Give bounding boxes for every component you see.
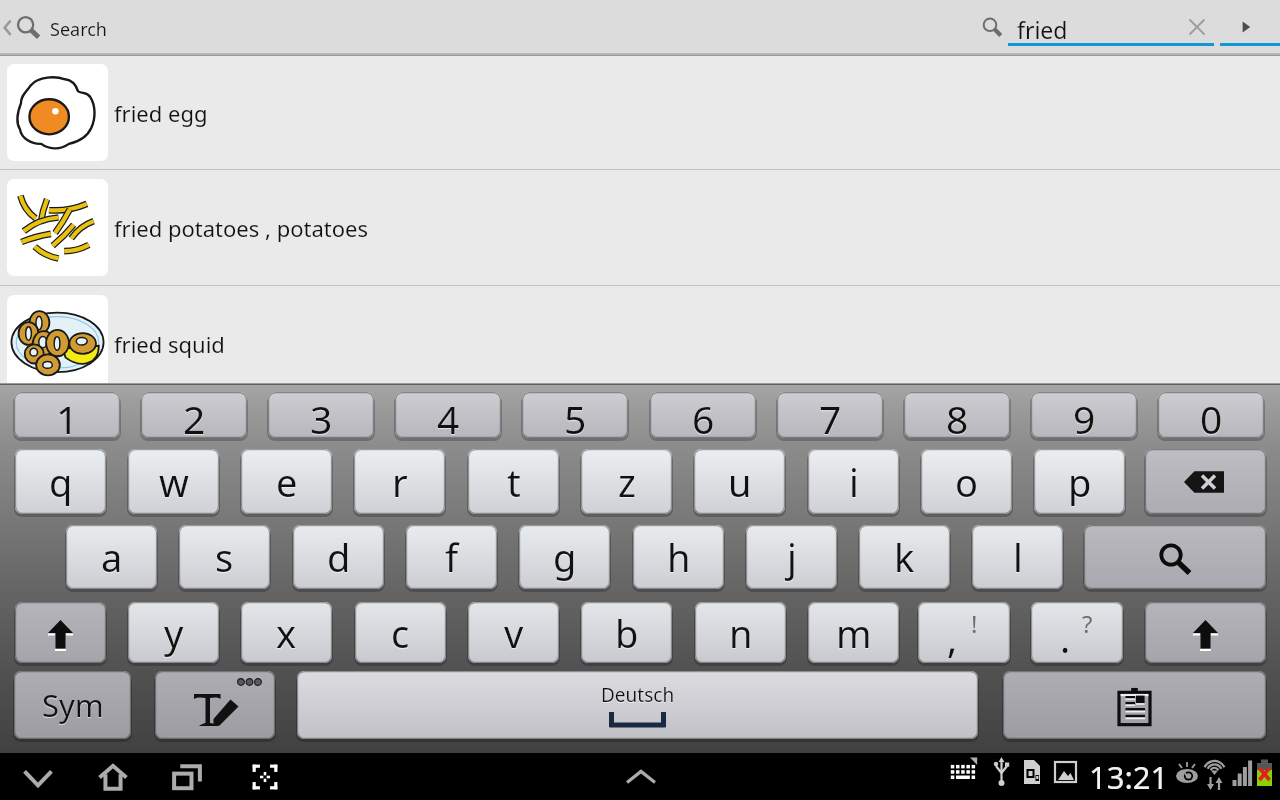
staticText: ! [971, 607, 978, 640]
staticText: b [615, 607, 639, 659]
staticText: j [787, 532, 797, 584]
button[interactable]: y [128, 602, 219, 663]
button[interactable]: b [581, 602, 672, 663]
button[interactable]: 4 [395, 392, 501, 438]
staticText: f [445, 531, 459, 583]
staticText: u [728, 457, 752, 509]
button[interactable]: Clipboard [1003, 671, 1266, 739]
button[interactable]: Hide keyboard [617, 753, 665, 800]
button[interactable]: fried potatoes , potatoes [0, 170, 1280, 285]
staticText: s [215, 531, 234, 583]
button[interactable]: e [241, 449, 332, 514]
button[interactable]: z [581, 449, 672, 514]
staticText: r [392, 456, 408, 508]
button[interactable]: g [519, 525, 610, 589]
staticText: n [729, 607, 753, 659]
button[interactable]: 0 [1158, 392, 1264, 438]
staticText: p [1068, 456, 1092, 508]
button[interactable]: 8 [904, 392, 1010, 438]
staticText: Deutsch [601, 682, 675, 708]
staticText: 2 [183, 392, 206, 438]
staticText: h [667, 532, 691, 584]
staticText: fried [1017, 14, 1068, 45]
button[interactable]: t [468, 449, 559, 514]
button[interactable]: Search [1084, 525, 1266, 589]
button[interactable]: Recent apps [163, 753, 211, 800]
staticText: a [101, 531, 123, 583]
staticText: 0 [1200, 393, 1223, 438]
staticText: t [507, 457, 521, 509]
button[interactable]: Shift [1145, 602, 1266, 663]
button[interactable]: Back [14, 753, 62, 800]
staticText: i [849, 456, 859, 508]
button[interactable]: Submit search [1224, 0, 1268, 53]
button[interactable]: p [1034, 449, 1125, 514]
staticText: 2 [183, 393, 206, 438]
staticText: fried squid [114, 329, 225, 359]
staticText: 9 [1073, 393, 1096, 438]
button[interactable]: Screenshot [241, 753, 289, 800]
button[interactable]: r [354, 449, 445, 514]
button[interactable]: 7 [777, 392, 883, 438]
staticText: x [276, 608, 297, 660]
button[interactable]: j [746, 525, 837, 589]
button[interactable]: u [694, 449, 785, 514]
button[interactable]: 5 [522, 392, 628, 438]
button[interactable]: Up, Search [0, 0, 118, 53]
staticText: m [836, 607, 872, 659]
button[interactable]: c [355, 602, 446, 663]
button[interactable]: Backspace [1145, 449, 1266, 514]
staticText: a [101, 532, 123, 584]
staticText: m [836, 608, 872, 660]
button[interactable]: fried squid [0, 286, 1280, 401]
staticText: g [553, 532, 577, 584]
staticText: u [728, 456, 752, 508]
button[interactable]: Comma [918, 602, 1010, 663]
button[interactable]: Input method [155, 671, 275, 739]
button[interactable]: i [808, 449, 899, 514]
button[interactable]: f [406, 525, 497, 589]
button[interactable]: 3 [268, 392, 374, 438]
button[interactable]: q [15, 449, 106, 514]
button[interactable]: Shift [15, 602, 106, 663]
button[interactable]: h [633, 525, 724, 589]
staticText: w [159, 457, 189, 509]
staticText: v [504, 608, 524, 660]
button[interactable]: a [66, 525, 157, 589]
button[interactable]: o [921, 449, 1012, 514]
staticText: f [445, 532, 459, 584]
button[interactable]: Period [1031, 602, 1123, 663]
staticText: Sym [42, 684, 104, 726]
button[interactable]: Sym [14, 671, 131, 739]
button[interactable]: v [468, 602, 559, 663]
staticText: 1 [56, 393, 79, 438]
button[interactable]: 2 [141, 392, 247, 438]
button[interactable]: Space [297, 671, 978, 739]
button[interactable]: d [293, 525, 384, 589]
button[interactable]: 1 [14, 392, 120, 438]
staticText: z [618, 457, 636, 509]
staticText: 0 [1200, 392, 1223, 438]
staticText: 6 [692, 393, 715, 438]
button[interactable]: fried egg [0, 56, 1280, 169]
staticText: b [615, 608, 639, 660]
staticText: d [327, 532, 351, 584]
staticText: l [1013, 532, 1023, 584]
button[interactable]: m [808, 602, 899, 663]
staticText: 5 [564, 392, 587, 438]
button[interactable]: l [972, 525, 1063, 589]
button[interactable]: n [695, 602, 786, 663]
button[interactable]: k [859, 525, 950, 589]
staticText: 4 [437, 392, 460, 438]
staticText: q [49, 457, 73, 509]
staticText: y [164, 608, 184, 660]
button[interactable]: Home [89, 753, 137, 800]
staticText: v [504, 607, 524, 659]
button[interactable]: s [179, 525, 270, 589]
button[interactable]: 9 [1031, 392, 1137, 438]
staticText: k [894, 532, 915, 584]
button[interactable]: Clear query [1178, 0, 1216, 53]
button[interactable]: 6 [650, 392, 756, 438]
button[interactable]: x [241, 602, 332, 663]
button[interactable]: w [128, 449, 219, 514]
